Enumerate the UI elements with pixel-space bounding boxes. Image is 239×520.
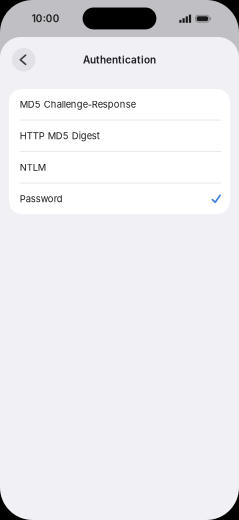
staticText: NTLM	[20, 162, 46, 173]
button[interactable]: Back	[12, 48, 35, 71]
button[interactable]: Password	[9, 183, 230, 214]
button[interactable]: HTTP MD5 Digest	[9, 120, 230, 151]
staticText: HTTP MD5 Digest	[20, 130, 100, 141]
button[interactable]: MD5 Challenge-Response	[9, 89, 230, 120]
button[interactable]: NTLM	[9, 152, 230, 183]
staticText: Authentication	[83, 54, 156, 66]
staticText: MD5 Challenge-Response	[20, 99, 136, 110]
staticText: 10:00	[32, 13, 60, 25]
staticText: Password	[20, 193, 63, 204]
